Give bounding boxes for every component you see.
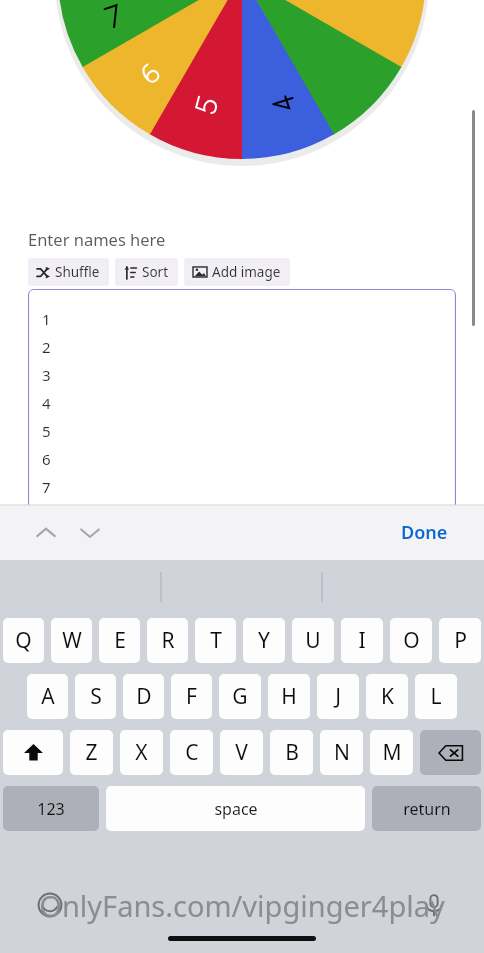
- staticText: N: [334, 738, 350, 767]
- staticText: G: [232, 682, 248, 711]
- staticText: 1: [42, 309, 51, 329]
- staticText: O: [403, 626, 420, 655]
- button[interactable]: N: [320, 730, 363, 775]
- staticText: K: [381, 682, 394, 711]
- button[interactable]: O: [390, 618, 432, 663]
- staticText: Shuffle: [55, 263, 100, 281]
- button[interactable]: D: [123, 674, 164, 719]
- button[interactable]: return: [372, 786, 481, 831]
- staticText: 123: [37, 798, 65, 820]
- button[interactable]: Backspace: [420, 730, 481, 775]
- staticText: W: [62, 626, 82, 655]
- staticText: 3: [42, 365, 51, 385]
- button[interactable]: Y: [243, 618, 285, 663]
- button[interactable]: 123: [3, 786, 99, 831]
- staticText: D: [136, 682, 152, 711]
- staticText: E: [114, 626, 126, 655]
- button[interactable]: 1: [28, 289, 456, 505]
- staticText: Done: [401, 520, 448, 545]
- staticText: Z: [85, 738, 98, 767]
- staticText: L: [430, 682, 442, 711]
- button[interactable]: Done: [395, 512, 454, 553]
- button[interactable]: B: [270, 730, 313, 775]
- button[interactable]: Q: [3, 618, 44, 663]
- staticText: M: [382, 738, 402, 767]
- button[interactable]: U: [292, 618, 334, 663]
- button[interactable]: G: [219, 674, 261, 719]
- button[interactable]: Spin the wheel: [0, 0, 484, 175]
- button[interactable]: L: [415, 674, 457, 719]
- button[interactable]: X: [120, 730, 163, 775]
- button[interactable]: F: [171, 674, 212, 719]
- staticText: F: [186, 682, 197, 711]
- button[interactable]: A: [27, 674, 68, 719]
- staticText: U: [305, 626, 321, 655]
- button[interactable]: Previous field: [24, 511, 68, 555]
- button[interactable]: R: [147, 618, 188, 663]
- staticText: B: [285, 738, 299, 767]
- staticText: 8: [42, 501, 51, 505]
- staticText: 5: [42, 421, 51, 441]
- staticText: J: [335, 682, 341, 711]
- button[interactable]: Dictation: [414, 885, 454, 925]
- staticText: R: [161, 626, 175, 655]
- button[interactable]: Z: [70, 730, 113, 775]
- staticText: 7: [42, 477, 51, 497]
- button[interactable]: space: [106, 786, 365, 831]
- staticText: Y: [258, 626, 270, 655]
- staticText: X: [135, 738, 148, 767]
- button[interactable]: M: [370, 730, 413, 775]
- button[interactable]: Emoji: [30, 885, 70, 925]
- button[interactable]: K: [366, 674, 408, 719]
- staticText: OnlyFans.com/vipginger4play: [39, 886, 445, 925]
- staticText: I: [358, 626, 366, 655]
- staticText: A: [41, 682, 55, 711]
- staticText: T: [210, 626, 222, 655]
- button[interactable]: T: [195, 618, 236, 663]
- staticText: Q: [15, 626, 32, 655]
- staticText: space: [214, 798, 258, 820]
- button[interactable]: Add image: [184, 258, 290, 286]
- staticText: H: [281, 682, 297, 711]
- staticText: Add image: [212, 263, 281, 281]
- staticText: return: [403, 798, 451, 820]
- button[interactable]: Sort: [115, 258, 178, 286]
- button[interactable]: W: [51, 618, 92, 663]
- staticText: Sort: [142, 263, 169, 281]
- staticText: V: [235, 738, 248, 767]
- button[interactable]: Next field: [68, 511, 112, 555]
- button[interactable]: Shuffle: [28, 258, 109, 286]
- button[interactable]: Shift: [3, 730, 63, 775]
- button[interactable]: C: [170, 730, 213, 775]
- button[interactable]: P: [439, 618, 481, 663]
- staticText: 2: [42, 337, 51, 357]
- button[interactable]: E: [99, 618, 140, 663]
- button[interactable]: H: [268, 674, 310, 719]
- button[interactable]: J: [317, 674, 359, 719]
- staticText: 6: [42, 449, 51, 469]
- button[interactable]: S: [75, 674, 116, 719]
- button[interactable]: I: [341, 618, 383, 663]
- staticText: S: [90, 682, 102, 711]
- staticText: C: [185, 738, 199, 767]
- staticText: 4: [42, 393, 51, 413]
- button[interactable]: V: [220, 730, 263, 775]
- staticText: Enter names here: [28, 228, 166, 250]
- staticText: P: [454, 626, 467, 655]
